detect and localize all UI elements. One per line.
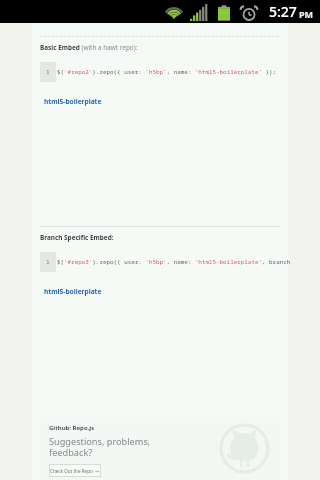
staticText: 1 xyxy=(46,68,50,76)
staticText: Suggestions, problems, feedback? xyxy=(49,435,151,458)
button[interactable]: Check Out the Repo → xyxy=(49,464,101,477)
staticText: Github: Repo.js xyxy=(49,424,95,432)
staticText: html5-boilerplate xyxy=(44,287,102,296)
other: GitHub xyxy=(219,423,270,474)
staticText: html5-boilerplate xyxy=(44,97,102,106)
staticText: PM xyxy=(299,8,314,20)
staticText: $('#repo2').repo({ user: 'h5bp', name: '… xyxy=(57,68,277,76)
button[interactable]: html5-boilerplate xyxy=(44,97,102,106)
other: Alarm set xyxy=(242,3,257,21)
staticText: Check Out the Repo → xyxy=(50,468,100,474)
other: Battery xyxy=(217,5,231,21)
staticText: Branch Specific Embed: xyxy=(40,233,114,242)
staticText: Basic Embed (with a hawt repo): xyxy=(40,43,138,52)
other: Wi-Fi xyxy=(164,4,184,19)
other: Signal strength xyxy=(190,4,208,21)
button[interactable]: html5-boilerplate xyxy=(44,287,102,296)
staticText: 1 xyxy=(46,258,50,266)
staticText: $('#repo3').repo({ user: 'h5bp', name: '… xyxy=(57,258,291,266)
staticText: 5:27 xyxy=(269,2,297,21)
